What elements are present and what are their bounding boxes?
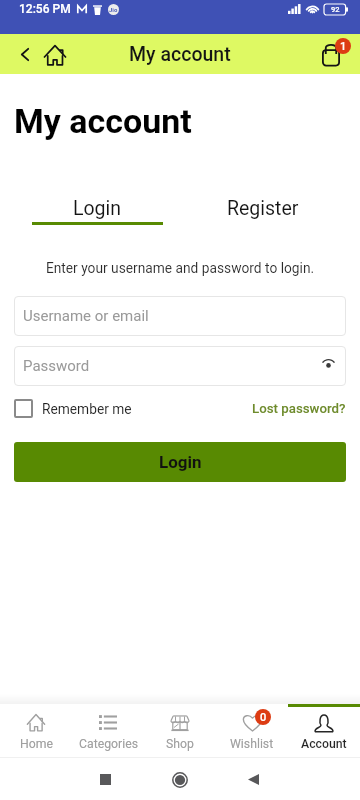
staticText: Password <box>23 357 90 375</box>
staticText: Login <box>159 452 202 472</box>
staticText: My account <box>14 101 192 141</box>
button[interactable]: Password <box>14 346 346 386</box>
staticText: Username or email <box>23 307 149 325</box>
button[interactable]: Back <box>233 759 274 800</box>
button[interactable]: Home <box>159 759 200 800</box>
button[interactable]: Home <box>0 704 72 757</box>
staticText: Wishlist <box>230 737 274 751</box>
staticText: 92 <box>331 5 340 14</box>
button[interactable]: Lost password? <box>252 401 346 417</box>
staticText: My account <box>129 43 231 66</box>
staticText: Account <box>301 737 347 751</box>
button[interactable]: Username or email <box>14 296 346 336</box>
button[interactable]: Login <box>14 197 180 225</box>
staticText: Login <box>73 197 122 220</box>
button[interactable]: Remember me <box>14 399 132 418</box>
staticText: Jio <box>109 6 118 13</box>
button[interactable]: Categories <box>72 704 144 757</box>
staticText: Shop <box>166 737 194 751</box>
staticText: Enter your username and password to logi… <box>0 260 360 276</box>
button[interactable]: Account <box>288 704 360 757</box>
button[interactable]: Login <box>14 442 346 482</box>
button[interactable]: Show password <box>319 357 337 375</box>
staticText: Register <box>227 197 299 220</box>
button[interactable]: 0 <box>216 704 288 757</box>
staticText: Remember me <box>42 401 132 417</box>
staticText: 0 <box>260 711 267 724</box>
staticText: 1 <box>340 40 347 53</box>
button[interactable]: Recent apps <box>85 759 126 800</box>
staticText: Categories <box>79 737 138 751</box>
staticText: Home <box>20 737 53 751</box>
button[interactable]: Back <box>15 44 35 64</box>
staticText: Lost password? <box>252 401 346 417</box>
button[interactable]: Register <box>180 197 346 222</box>
button[interactable]: Cart <box>312 36 350 74</box>
staticText: 12:56 PM <box>19 2 71 16</box>
button[interactable]: Shop <box>144 704 216 757</box>
button[interactable]: Home <box>41 41 69 69</box>
